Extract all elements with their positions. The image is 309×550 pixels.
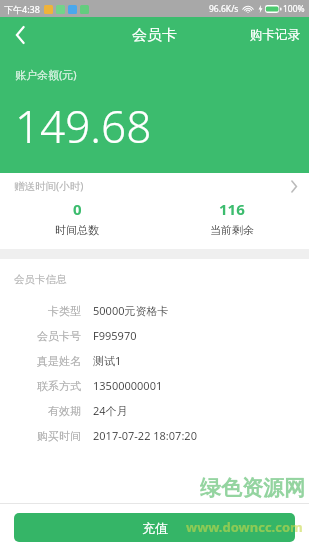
staticText: 购买时间 — [37, 429, 81, 443]
staticText: 24个月 — [93, 403, 128, 418]
staticText: 时间总数 — [55, 223, 99, 237]
staticText: 0 — [73, 199, 82, 219]
staticText: 绿色资源网 — [200, 475, 305, 501]
staticText: 充值 — [142, 520, 168, 536]
staticText: 2017-07-22 18:07:20 — [93, 428, 197, 443]
staticText: 96.6K/s — [209, 3, 239, 15]
staticText: 购卡记录 — [250, 27, 300, 43]
staticText: 赠送时间(小时) — [14, 179, 84, 193]
staticText: 116 — [219, 199, 245, 219]
staticText: 50000元资格卡 — [93, 303, 169, 318]
button[interactable]: Back — [0, 17, 40, 53]
staticText: 联系方式 — [37, 379, 81, 393]
staticText: www.downcc.com — [186, 518, 303, 536]
staticText: 会员卡 — [132, 26, 177, 45]
staticText: 会员卡号 — [37, 329, 81, 343]
staticText: 100% — [283, 3, 305, 15]
staticText: 下午4:38 — [4, 3, 40, 15]
staticText: 测试1 — [93, 353, 122, 368]
staticText: 当前剩余 — [210, 223, 254, 237]
staticText: 13500000001 — [93, 378, 163, 393]
staticText: 账户余额(元) — [15, 67, 77, 82]
staticText: F995970 — [93, 328, 137, 343]
button[interactable]: 0 — [0, 199, 154, 237]
staticText: 真是姓名 — [37, 354, 81, 368]
staticText: 149.68 — [15, 96, 152, 156]
staticText: 会员卡信息 — [14, 273, 67, 286]
staticText: 有效期 — [48, 404, 81, 418]
button[interactable]: 116 — [154, 199, 309, 237]
staticText: 卡类型 — [48, 304, 81, 318]
button[interactable]: 购卡记录 — [241, 17, 309, 53]
button[interactable]: 充值 — [14, 513, 295, 542]
button[interactable]: 赠送时间(小时) — [0, 173, 309, 199]
